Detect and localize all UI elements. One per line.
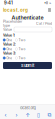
button[interactable]: Two (15, 38, 25, 42)
staticText: Two (18, 47, 25, 51)
button[interactable]: Bookmarks (33, 111, 44, 119)
staticText: Value 2: (3, 42, 16, 46)
staticText: ↑ (25, 112, 29, 118)
staticText: locast.org (19, 106, 35, 110)
staticText: Authenticate (11, 14, 43, 21)
button[interactable]: Submit (3, 62, 52, 69)
button[interactable]: Two (15, 47, 25, 51)
staticText: locast.org (3, 7, 28, 13)
button[interactable]: One (3, 38, 12, 42)
staticText: ‹ (4, 112, 6, 118)
staticText: Two (18, 38, 25, 42)
staticText: One (6, 38, 12, 42)
staticText: Placeholder type (3, 19, 22, 28)
staticText: Submit (21, 63, 34, 68)
staticText: Value (3, 27, 12, 32)
button[interactable]: Forward (11, 111, 22, 119)
staticText: › (15, 112, 17, 118)
staticText: Cat / Prod (36, 21, 52, 26)
staticText: ▯ (37, 112, 40, 118)
staticText: 9:41 (4, 0, 13, 6)
button[interactable]: Share (22, 111, 33, 119)
staticText: •ıl ⌁ (44, 1, 51, 5)
staticText: Two (18, 56, 25, 60)
button[interactable]: Tabs (44, 111, 55, 119)
button[interactable]: Menu (47, 7, 52, 12)
staticText: One (6, 56, 12, 60)
staticText: ⧉ (47, 112, 51, 118)
button[interactable]: One (3, 56, 12, 60)
button[interactable]: One (3, 47, 12, 51)
button[interactable]: Two (15, 56, 25, 60)
button[interactable]: Back (0, 111, 11, 119)
staticText: Value 3: (3, 51, 16, 55)
staticText: Value 1: (3, 33, 15, 37)
staticText: One (6, 47, 12, 51)
